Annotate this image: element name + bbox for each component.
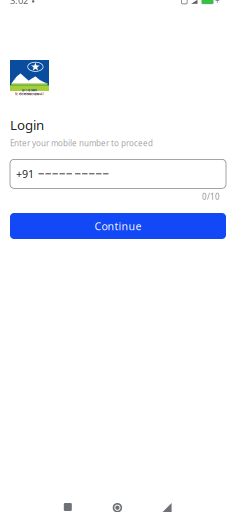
button[interactable]: Recent apps — [43, 503, 93, 512]
staticText: Continue — [94, 219, 141, 233]
staticText: We Celebrate you All — [14, 92, 44, 96]
button[interactable]: Continue — [10, 213, 226, 239]
staticText: + — [215, 0, 220, 6]
staticText: +91 — [16, 167, 34, 181]
staticText: LITTLE STAR — [22, 88, 37, 92]
staticText: Enter your mobile number to proceed — [10, 138, 153, 148]
staticText: 3:02 — [10, 0, 28, 7]
staticText: Login — [10, 116, 44, 134]
button[interactable]: Back — [142, 503, 192, 512]
staticText: INTERNATIONAL — [18, 92, 40, 95]
staticText: 0/10 — [202, 191, 220, 202]
button[interactable]: Home — [93, 503, 142, 512]
